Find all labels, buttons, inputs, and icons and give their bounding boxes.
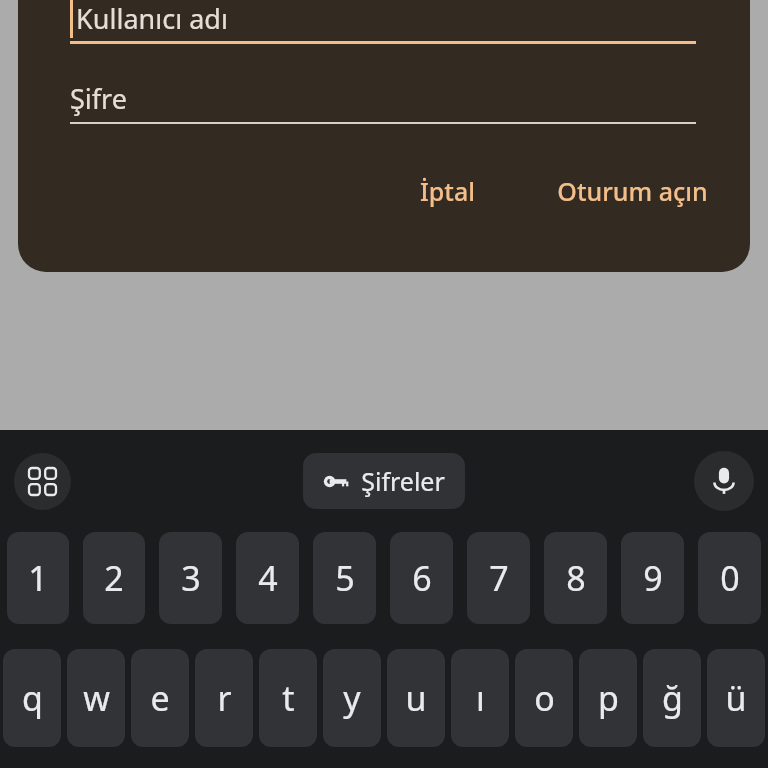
staticText: 1 <box>28 555 48 601</box>
staticText: ü <box>725 675 747 721</box>
staticText: 0 <box>720 555 740 601</box>
button[interactable]: y <box>323 649 381 747</box>
staticText: p <box>598 675 619 721</box>
button[interactable]: 5 <box>313 532 376 624</box>
button[interactable]: 4 <box>236 532 299 624</box>
staticText: t <box>282 675 295 721</box>
button[interactable]: Kullanıcı adı <box>70 0 696 44</box>
button[interactable]: Oturum açın <box>543 166 722 216</box>
staticText: r <box>217 675 232 721</box>
staticText: İptal <box>420 174 475 208</box>
staticText: 6 <box>412 555 432 601</box>
staticText: 7 <box>489 555 509 601</box>
staticText: ğ <box>662 675 683 721</box>
button[interactable]: ü <box>707 649 765 747</box>
button[interactable]: İptal <box>406 166 489 216</box>
staticText: q <box>22 675 43 721</box>
staticText: 3 <box>181 555 201 601</box>
staticText: 4 <box>258 555 278 601</box>
button[interactable]: Şifreler <box>303 453 465 509</box>
staticText: Oturum açın <box>557 174 708 208</box>
staticText: u <box>405 675 427 721</box>
staticText: 5 <box>335 555 355 601</box>
button[interactable]: ğ <box>643 649 701 747</box>
button[interactable]: 7 <box>467 532 530 624</box>
staticText: 8 <box>566 555 586 601</box>
button[interactable]: u <box>387 649 445 747</box>
staticText: o <box>534 675 555 721</box>
staticText: y <box>343 675 361 721</box>
button[interactable]: 6 <box>390 532 453 624</box>
button[interactable]: o <box>515 649 573 747</box>
button[interactable]: t <box>259 649 317 747</box>
button[interactable]: 2 <box>83 532 145 624</box>
staticText: w <box>83 675 110 721</box>
button[interactable]: ı <box>451 649 509 747</box>
button[interactable]: Sesle yazma <box>694 451 754 511</box>
staticText: Şifre <box>70 80 127 117</box>
button[interactable]: r <box>195 649 253 747</box>
button[interactable]: p <box>579 649 637 747</box>
button[interactable]: Şifre <box>70 72 696 124</box>
button[interactable]: 0 <box>698 532 761 624</box>
button[interactable]: 8 <box>544 532 607 624</box>
staticText: 9 <box>643 555 663 601</box>
button[interactable]: e <box>131 649 189 747</box>
button[interactable]: 1 <box>7 532 69 624</box>
staticText: ı <box>476 675 485 721</box>
button[interactable]: w <box>67 649 125 747</box>
staticText: 2 <box>104 555 124 601</box>
button[interactable]: 3 <box>159 532 222 624</box>
button[interactable]: q <box>3 649 61 747</box>
staticText: e <box>150 675 170 721</box>
staticText: Kullanıcı adı <box>76 0 228 37</box>
button[interactable]: 9 <box>621 532 684 624</box>
staticText: Şifreler <box>361 464 445 498</box>
button[interactable]: Klavye düzeni <box>14 453 71 510</box>
